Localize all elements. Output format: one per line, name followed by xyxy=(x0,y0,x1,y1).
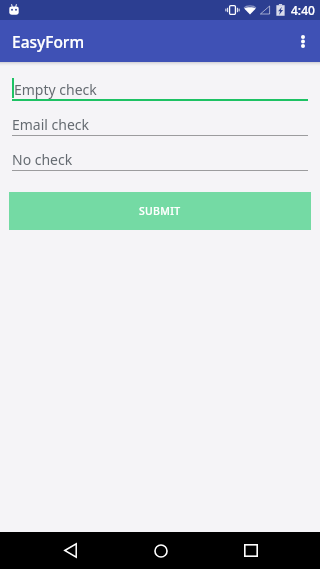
staticText: No check xyxy=(12,150,73,169)
button[interactable]: Email check xyxy=(12,101,308,136)
staticText: Empty check xyxy=(14,80,97,99)
button[interactable]: Back xyxy=(46,532,95,569)
staticText: EasyForm xyxy=(12,31,85,52)
staticText: 4:40 xyxy=(291,2,315,18)
staticText: Email check xyxy=(12,115,90,134)
button[interactable]: SUBMIT xyxy=(9,192,311,230)
staticText: SUBMIT xyxy=(139,204,181,218)
button[interactable]: Empty check xyxy=(12,66,308,101)
button[interactable]: No check xyxy=(12,136,308,171)
button[interactable]: Home xyxy=(136,532,185,569)
button[interactable]: Recent apps xyxy=(226,532,275,569)
button[interactable]: More options xyxy=(282,20,320,62)
